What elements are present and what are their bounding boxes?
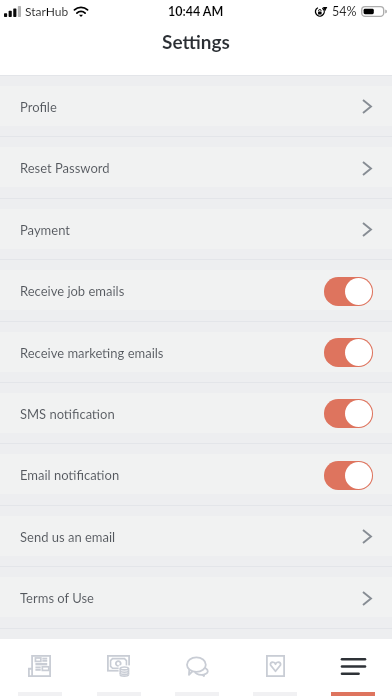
staticText: Email notification [20, 467, 120, 483]
button[interactable]: Payment [0, 199, 392, 260]
staticText: Reset Password [20, 160, 110, 176]
button[interactable]: News [0, 639, 79, 689]
staticText: Send us an email [20, 529, 116, 545]
button[interactable]: Terms of Use [0, 567, 392, 629]
button[interactable]: Menu [314, 639, 392, 689]
button[interactable]: Receive marketing emails [324, 338, 373, 367]
staticText: Receive job emails [20, 283, 125, 299]
button[interactable]: Profile [0, 76, 392, 137]
staticText: Settings [162, 30, 230, 53]
button[interactable]: Email notification [0, 444, 392, 506]
button[interactable]: Email notification [324, 461, 373, 490]
button[interactable]: Receive marketing emails [0, 322, 392, 383]
button[interactable]: Saved [236, 639, 314, 689]
staticText: Payment [20, 222, 70, 238]
button[interactable]: Receive job emails [324, 277, 373, 306]
button[interactable]: Reset Password [0, 137, 392, 199]
staticText: Receive marketing emails [20, 345, 164, 361]
button[interactable]: SMS notification [0, 383, 392, 444]
staticText: 10:44 AM [168, 4, 224, 19]
staticText: Profile [20, 99, 57, 115]
staticText: 54% [332, 4, 357, 19]
button[interactable]: Receive job emails [0, 260, 392, 322]
button[interactable]: SMS notification [324, 399, 373, 428]
button[interactable]: Chat [158, 639, 236, 689]
staticText: SMS notification [20, 406, 115, 422]
button[interactable]: Send us an email [0, 506, 392, 567]
staticText: StarHub [25, 4, 69, 18]
staticText: Terms of Use [20, 590, 94, 606]
button[interactable]: Payments [79, 639, 158, 689]
